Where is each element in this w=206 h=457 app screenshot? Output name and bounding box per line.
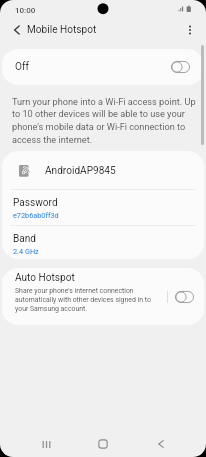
button[interactable]: Home [89,430,117,457]
button[interactable]: AndroidAP9845 [2,151,204,190]
button[interactable]: Navigate up [7,20,27,40]
button[interactable]: Recent apps [32,430,60,457]
staticText: Off [15,61,29,73]
button[interactable]: Band [2,228,204,259]
button[interactable]: Back [147,430,175,457]
staticText: e72b6ab0ff3d [13,211,59,220]
staticText: 2.4 GHz [13,247,39,256]
staticText: Share your phone's internet connection a… [15,287,158,313]
staticText: Turn your phone into a Wi-Fi access poin… [12,96,198,145]
staticText: Mobile Hotspot [27,24,97,36]
staticText: Auto Hotspot [15,272,75,284]
staticText: 10:00 [15,6,36,15]
staticText: Password [13,197,58,209]
button[interactable]: More options [180,20,200,40]
button[interactable]: Auto Hotspot [2,268,204,325]
staticText: AndroidAP9845 [45,165,116,177]
button[interactable]: Off [2,49,204,85]
staticText: Band [13,233,37,245]
button[interactable]: Password [2,190,204,226]
